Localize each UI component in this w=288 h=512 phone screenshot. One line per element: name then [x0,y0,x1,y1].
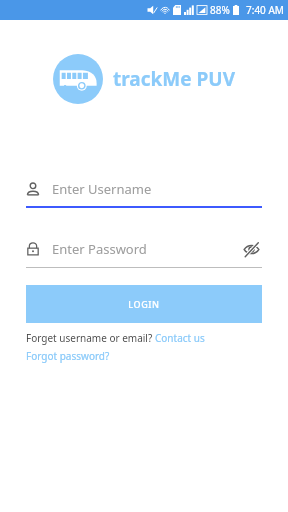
button[interactable]: Forgot password? [26,349,110,363]
staticText: 7:40 AM [246,3,284,17]
button[interactable]: Enter Password [26,236,262,262]
staticText: Forgot password? [26,349,110,363]
button[interactable]: LOGIN [26,285,262,323]
staticText: LOGIN [128,298,160,310]
staticText: trackMe PUV [113,66,236,92]
staticText: Enter Password [52,240,240,258]
button[interactable]: Enter Username [26,176,262,202]
staticText: 88% [210,3,230,17]
staticText: Enter Username [52,180,152,198]
staticText: Contact us [155,331,205,345]
staticText: Forget username or email? [26,331,155,345]
button[interactable]: Show password [240,238,262,260]
button[interactable]: Contact us [155,331,205,345]
